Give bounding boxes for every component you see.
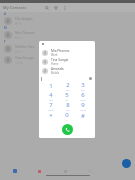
staticText: MNO [80,99,86,101]
staticText: WXYZ [80,109,86,111]
button[interactable]: 5 [59,91,75,101]
button[interactable]: 3 [75,81,91,91]
staticText: ABC [65,89,70,91]
button[interactable]: Tabitha Tara [0,43,63,54]
staticText: 8 [66,101,70,109]
staticText: GHI [49,99,53,101]
button[interactable]: 6 [75,91,91,101]
button[interactable]: Mia Phoenix [39,48,95,57]
button[interactable]: 8 [59,101,75,111]
staticText: 6 [81,91,85,99]
button[interactable]: Tina Sungai [0,54,63,65]
staticText: 0 [65,111,69,119]
button[interactable]: Amanda [39,66,95,75]
button[interactable]: Photos app [61,167,69,175]
staticText: 7 [49,101,53,109]
staticText: PQRS [48,109,54,111]
staticText: JKL [65,99,69,101]
button[interactable]: * [43,111,59,121]
button[interactable]: Mia Phoenix [0,29,63,40]
staticText: A [4,12,6,15]
staticText: My Contacts [3,5,27,10]
staticText: Tina Sungai [51,58,69,62]
staticText: 4 [49,91,53,99]
button[interactable]: 4 [43,91,59,101]
staticText: Mobile [51,71,60,75]
button[interactable]: Add contact [122,159,131,168]
button[interactable]: Clear [89,77,92,80]
button[interactable]: 0 [59,111,75,121]
button[interactable]: 2 [59,81,75,91]
staticText: DEF [81,89,85,91]
button[interactable]: # [75,111,91,121]
staticText: Home [51,62,59,66]
staticText: Tina Sungai [15,55,34,60]
staticText: TUV [65,109,70,111]
staticText: 3 [81,81,85,89]
staticText: T [4,40,6,43]
staticText: * [49,112,53,120]
button[interactable]: Search [42,3,51,12]
staticText: Tabitha Tara [15,44,35,49]
button[interactable]: 1 [43,81,59,91]
staticText: + [66,119,68,121]
staticText: Mia Phoenix [51,49,70,53]
button[interactable]: Tina Sungai [39,57,95,66]
button[interactable]: Messages app [35,167,43,175]
button[interactable]: 7 [43,101,59,111]
button[interactable]: More options [60,3,69,12]
staticText: Work [51,53,58,57]
staticText: 9 [81,101,85,109]
staticText: M [4,26,7,29]
staticText: Amanda [51,67,64,71]
staticText: 1 [49,82,53,90]
staticText: Ella Adagio [15,16,33,21]
button[interactable]: Ella Adagio [0,15,63,26]
staticText: # [81,112,85,120]
staticText: Mia Phoenix [15,30,35,35]
button[interactable]: Sort [51,3,60,12]
button[interactable]: Contacts app [11,167,19,175]
staticText: 5 [65,91,69,99]
button[interactable]: 9 [75,101,91,111]
staticText: 2 [66,81,70,89]
button[interactable]: Call [62,124,73,135]
